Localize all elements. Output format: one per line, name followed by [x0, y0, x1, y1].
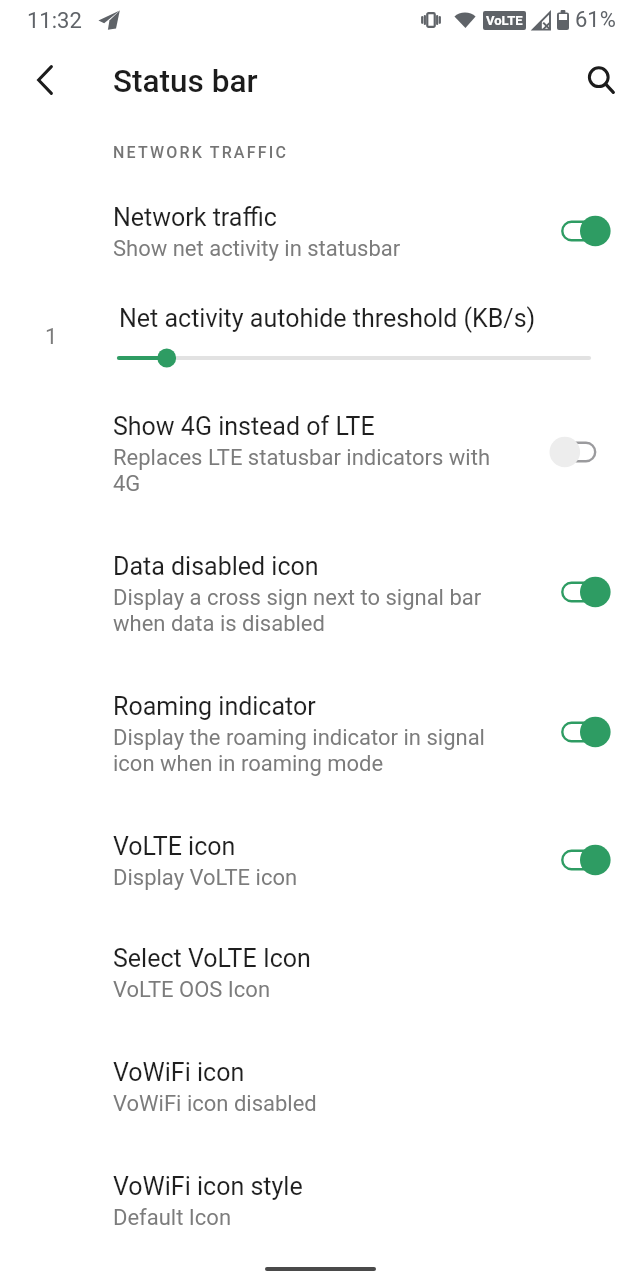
staticText: Show net activity in statusbar	[113, 236, 401, 262]
button[interactable]: Roaming indicator	[0, 664, 640, 804]
button[interactable]: Search	[577, 56, 625, 104]
staticText: VoWiFi icon style	[113, 1172, 303, 1201]
button[interactable]: Enabled	[547, 214, 609, 248]
staticText: Roaming indicator	[113, 692, 316, 721]
button[interactable]: Show 4G instead of LTE	[0, 384, 640, 524]
staticText: VoLTE icon	[113, 832, 236, 861]
staticText: VoWiFi icon disabled	[113, 1091, 317, 1117]
staticText: Display the roaming indicator in signal …	[113, 725, 485, 777]
button[interactable]: Select VoLTE Icon	[0, 916, 640, 1031]
staticText: Net activity autohide threshold (KB/s)	[119, 304, 536, 333]
staticText: Status bar	[113, 63, 258, 100]
staticText: Show 4G instead of LTE	[113, 412, 375, 441]
staticText: VoWiFi icon	[113, 1058, 245, 1087]
button[interactable]: Back	[21, 56, 69, 104]
button[interactable]: Disabled	[547, 435, 609, 469]
staticText: VoLTE	[486, 13, 523, 28]
button[interactable]: Network traffic	[0, 175, 640, 290]
button[interactable]: Enabled	[547, 843, 609, 877]
staticText: Default Icon	[113, 1205, 232, 1231]
staticText: Select VoLTE Icon	[113, 944, 311, 973]
staticText: Display a cross sign next to signal bar …	[113, 585, 482, 637]
staticText: 61%	[575, 7, 616, 33]
button[interactable]: Enabled	[547, 575, 609, 609]
button[interactable]: VoWiFi icon	[0, 1030, 640, 1145]
staticText: 11:32	[27, 8, 82, 34]
button[interactable]: VoLTE icon	[0, 804, 640, 919]
staticText: VoLTE OOS Icon	[113, 977, 271, 1003]
staticText: 1	[45, 324, 58, 350]
button[interactable]: Net activity autohide threshold (KB/s)	[0, 288, 640, 378]
button[interactable]: Data disabled icon	[0, 524, 640, 664]
staticText: Replaces LTE statusbar indicators with 4…	[113, 445, 491, 497]
staticText: NETWORK TRAFFIC	[113, 143, 289, 162]
staticText: Data disabled icon	[113, 552, 319, 581]
button[interactable]: VoWiFi icon style	[0, 1144, 640, 1259]
staticText: Network traffic	[113, 203, 277, 232]
button[interactable]: Enabled	[547, 715, 609, 749]
staticText: Display VoLTE icon	[113, 865, 298, 891]
